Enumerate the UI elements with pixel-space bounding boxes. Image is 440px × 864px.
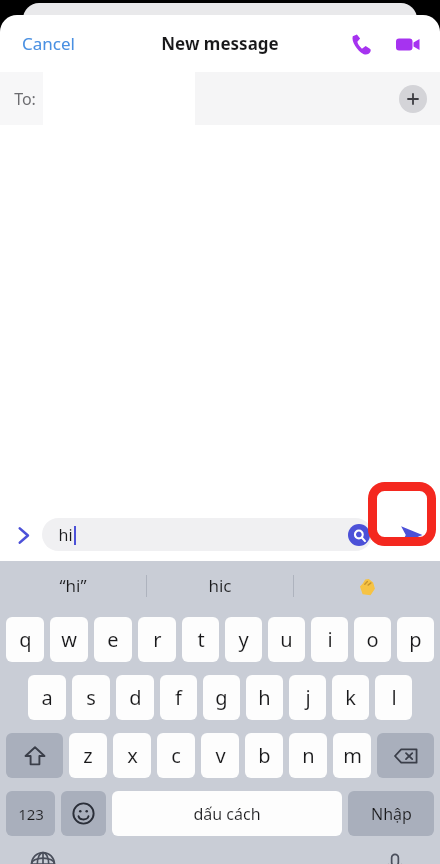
staticText: h xyxy=(258,684,271,711)
staticText: k xyxy=(345,684,356,711)
staticText: w xyxy=(61,626,77,653)
staticText: q xyxy=(19,626,32,653)
button[interactable]: hi xyxy=(42,518,372,551)
staticText: Nhập xyxy=(371,803,412,825)
staticText: u xyxy=(280,626,293,653)
staticText: z xyxy=(83,742,93,769)
staticText: v xyxy=(215,742,226,769)
button[interactable]: q xyxy=(6,617,44,662)
button[interactable]: j xyxy=(289,675,326,720)
staticText: e xyxy=(107,626,119,653)
button[interactable]: m xyxy=(333,733,371,778)
button[interactable]: r xyxy=(138,617,176,662)
staticText: l xyxy=(391,684,397,711)
button[interactable]: p xyxy=(397,617,434,662)
button[interactable]: n xyxy=(289,733,327,778)
button[interactable]: dấu cách xyxy=(112,791,342,836)
button[interactable]: e xyxy=(94,617,132,662)
button[interactable]: v xyxy=(201,733,239,778)
button[interactable]: Backspace xyxy=(377,733,434,778)
button[interactable]: a xyxy=(28,675,66,720)
button[interactable] xyxy=(294,561,440,610)
button[interactable]: l xyxy=(375,675,412,720)
staticText: r xyxy=(153,626,162,653)
button[interactable]: i xyxy=(311,617,348,662)
button[interactable]: Voice input xyxy=(378,848,412,864)
button[interactable]: Audio call xyxy=(340,23,382,65)
staticText: j xyxy=(305,684,311,711)
staticText: t xyxy=(197,626,205,653)
button[interactable]: Shift xyxy=(6,733,63,778)
button[interactable]: Video call xyxy=(386,23,428,65)
button[interactable]: w xyxy=(50,617,88,662)
button[interactable]: z xyxy=(69,733,107,778)
staticText: New message xyxy=(161,32,279,55)
staticText: d xyxy=(129,684,142,711)
button[interactable]: g xyxy=(203,675,240,720)
staticText: Cancel xyxy=(22,32,75,55)
button[interactable]: x xyxy=(113,733,151,778)
staticText: “hi” xyxy=(59,574,87,597)
staticText: o xyxy=(366,626,379,653)
staticText: i xyxy=(327,626,333,653)
button[interactable]: d xyxy=(116,675,154,720)
button[interactable]: Search xyxy=(348,524,370,546)
staticText: 123 xyxy=(18,804,44,824)
button[interactable]: b xyxy=(245,733,283,778)
staticText: hi xyxy=(58,524,73,546)
button[interactable]: h xyxy=(246,675,283,720)
staticText: dấu cách xyxy=(193,803,261,825)
staticText: a xyxy=(41,684,53,711)
button[interactable]: y xyxy=(225,617,262,662)
staticText: hic xyxy=(208,574,232,597)
staticText: p xyxy=(409,626,422,653)
button[interactable]: Send xyxy=(388,512,434,558)
button[interactable]: hic xyxy=(147,561,293,610)
button[interactable]: s xyxy=(72,675,110,720)
button[interactable]: u xyxy=(268,617,305,662)
button[interactable]: Expand apps xyxy=(4,516,42,554)
button[interactable]: o xyxy=(354,617,391,662)
staticText: b xyxy=(258,742,271,769)
staticText: To: xyxy=(14,88,36,110)
button[interactable]: Nhập xyxy=(348,791,434,836)
button[interactable]: f xyxy=(160,675,197,720)
staticText: c xyxy=(171,742,181,769)
button[interactable]: Change keyboard language xyxy=(26,848,60,864)
button[interactable]: c xyxy=(157,733,195,778)
staticText: s xyxy=(86,684,96,711)
staticText: x xyxy=(127,742,138,769)
button[interactable]: Cancel xyxy=(10,26,87,61)
staticText: g xyxy=(215,684,228,711)
staticText: m xyxy=(343,742,362,769)
button[interactable]: 123 xyxy=(6,791,55,836)
button[interactable]: “hi” xyxy=(0,561,146,610)
button[interactable]: Add contact xyxy=(399,85,427,113)
button[interactable]: Emoji xyxy=(61,791,106,836)
staticText: n xyxy=(302,742,315,769)
button[interactable]: t xyxy=(182,617,219,662)
staticText: f xyxy=(175,684,182,711)
staticText: y xyxy=(238,626,249,653)
button[interactable]: k xyxy=(332,675,369,720)
